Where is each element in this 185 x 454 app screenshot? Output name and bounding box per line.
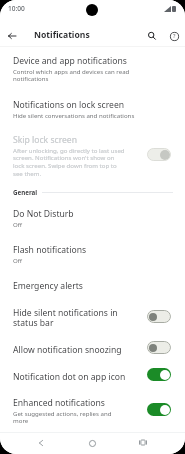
staticText: Control which apps and devices can read …: [13, 67, 140, 83]
button[interactable]: Notifications on lock screen: [0, 91, 185, 127]
staticText: Device and app notifications: [13, 55, 127, 67]
button[interactable]: Toggle: [147, 148, 171, 161]
button[interactable]: Flash notifications: [0, 236, 185, 272]
staticText: Enhanced notifications: [13, 397, 105, 409]
button[interactable]: Recents: [135, 434, 151, 450]
button[interactable]: Search: [144, 28, 160, 44]
staticText: After unlocking, go directly to last use…: [13, 146, 126, 178]
button[interactable]: Notification dot on app icon: [0, 363, 185, 390]
staticText: Allow notification snoozing: [13, 344, 122, 356]
button[interactable]: Toggle: [147, 341, 171, 354]
button[interactable]: Toggle: [147, 368, 171, 381]
button[interactable]: Hide silent notifications in status bar: [0, 300, 185, 336]
button[interactable]: Do Not Disturb: [0, 200, 185, 236]
staticText: Notification dot on app icon: [13, 371, 126, 383]
staticText: Do Not Disturb: [13, 208, 74, 220]
staticText: Notifications: [34, 29, 90, 41]
staticText: Notifications on lock screen: [13, 99, 125, 111]
button[interactable]: Home: [84, 435, 100, 451]
button[interactable]: Device and app notifications: [0, 47, 185, 91]
button[interactable]: Enhanced notifications: [0, 390, 185, 432]
staticText: Hide silent notifications in status bar: [13, 307, 126, 329]
staticText: ?: [173, 32, 176, 40]
button[interactable]: Back: [4, 28, 20, 44]
staticText: Off: [13, 256, 22, 264]
button[interactable]: Help: [166, 28, 182, 44]
staticText: Off: [13, 220, 22, 228]
staticText: Flash notifications: [13, 244, 87, 256]
button[interactable]: Back: [33, 435, 49, 451]
button[interactable]: Toggle: [147, 310, 171, 323]
button[interactable]: Emergency alerts: [0, 272, 185, 300]
button[interactable]: Skip lock screen: [0, 127, 185, 185]
staticText: Hide silent conversations and notificati…: [13, 111, 135, 119]
staticText: Skip lock screen: [13, 134, 78, 146]
staticText: General: [13, 188, 38, 196]
button[interactable]: Toggle: [147, 403, 171, 416]
staticText: Emergency alerts: [13, 280, 83, 292]
staticText: Get suggested actions, replies and more: [13, 409, 126, 425]
button[interactable]: Allow notification snoozing: [0, 336, 185, 363]
staticText: 10:00: [8, 4, 25, 13]
